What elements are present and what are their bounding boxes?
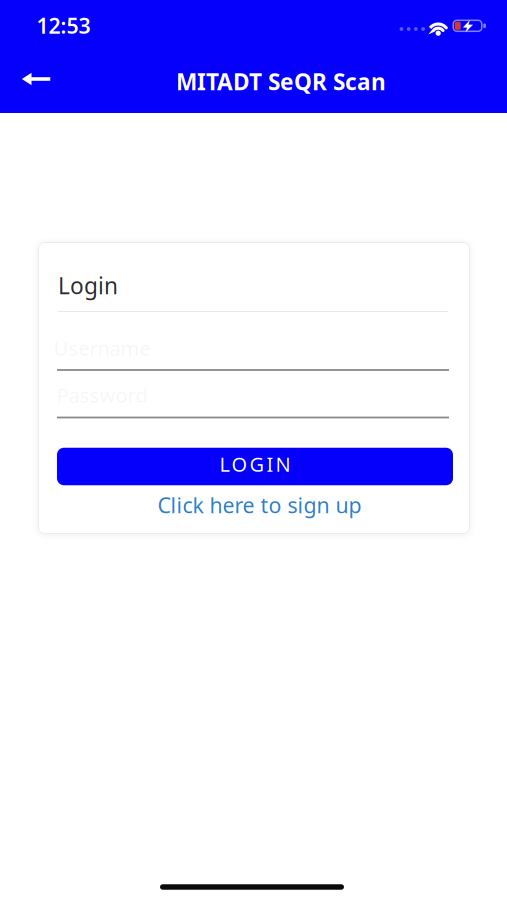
staticText: LOGIN [219,451,290,477]
button[interactable]: Back [14,57,58,101]
button[interactable]: Click here to sign up [157,491,361,519]
button[interactable]: LOGIN [57,448,453,485]
staticText: MITADT SeQR Scan [176,66,386,96]
staticText: 12:53 [36,11,90,40]
staticText: Click here to sign up [157,491,361,519]
button[interactable]: Username [57,333,449,371]
staticText: Login [58,270,118,300]
button[interactable]: Password [57,380,449,418]
